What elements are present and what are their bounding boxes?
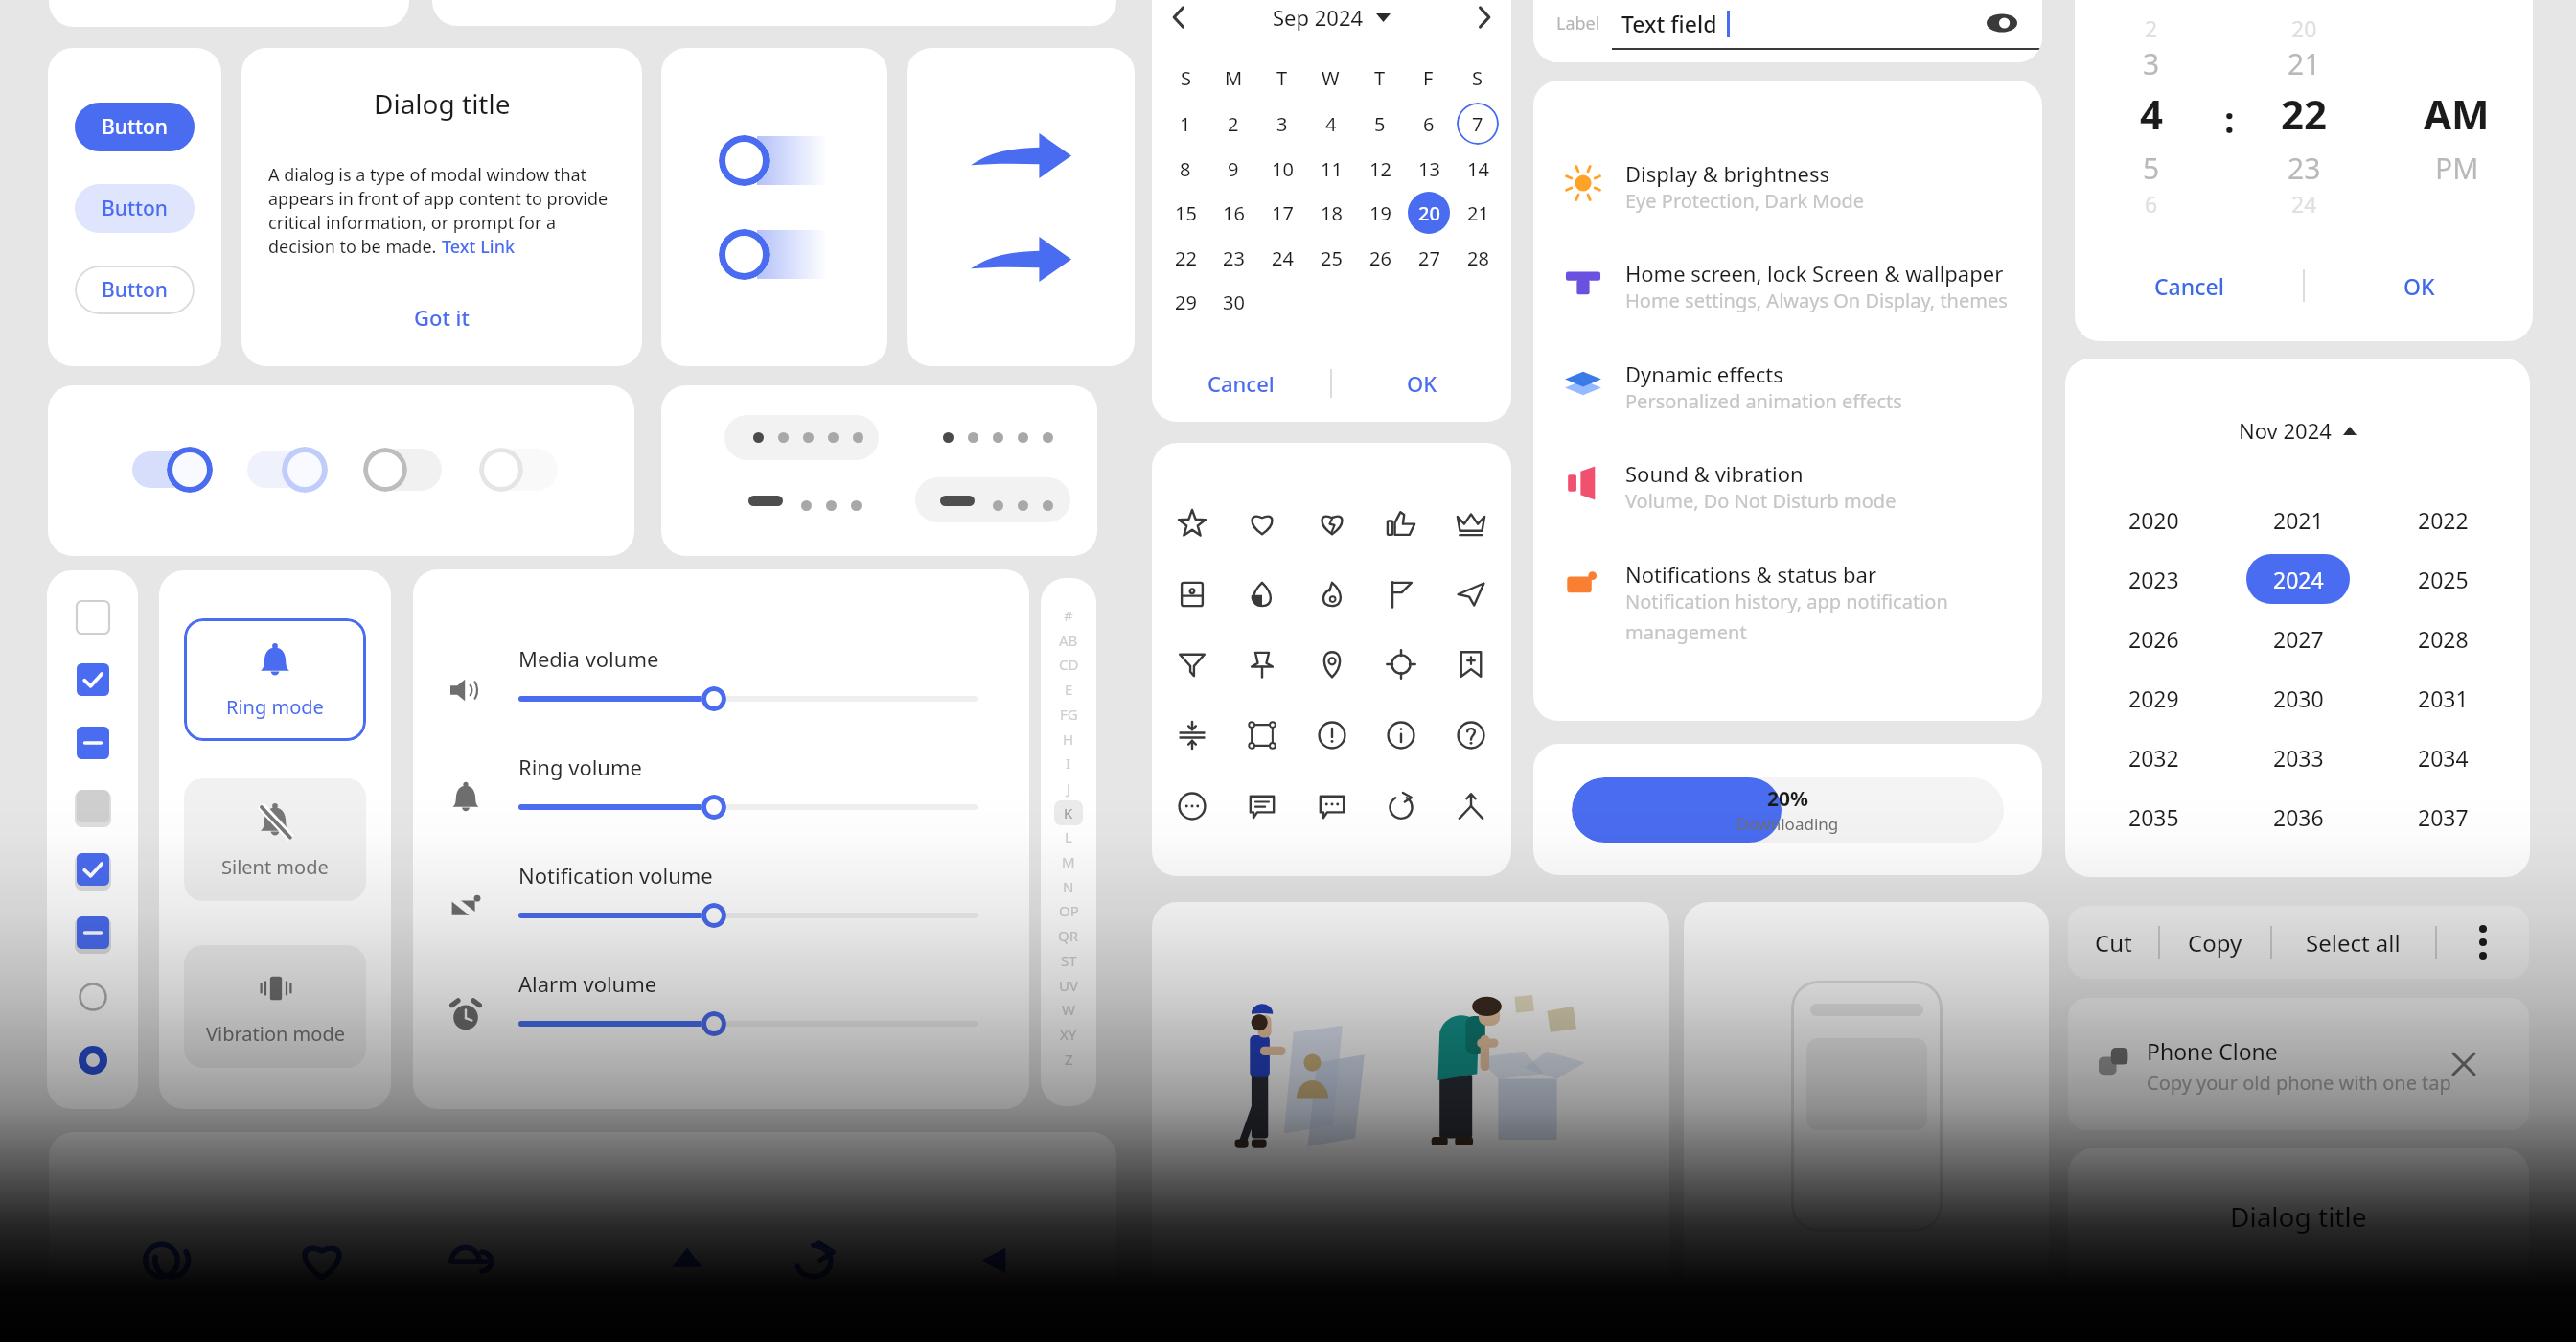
button[interactable]: help [1446, 710, 1496, 760]
button[interactable]: Button [75, 266, 195, 314]
button[interactable]: Cut [2068, 906, 2158, 979]
button[interactable] [915, 477, 1070, 522]
button[interactable]: Cancel [2075, 259, 2303, 312]
button[interactable]: crown [1446, 498, 1496, 548]
button[interactable]: Checkbox [75, 851, 111, 888]
button[interactable]: More options [2436, 906, 2529, 979]
button[interactable]: location [1307, 639, 1357, 689]
button[interactable]: Display & brightness [1562, 159, 2035, 214]
button[interactable]: drop [1237, 569, 1287, 619]
button[interactable]: 13 [1408, 148, 1450, 190]
button[interactable]: Checkbox [75, 725, 111, 761]
button[interactable]: 2026 [2102, 613, 2205, 663]
button[interactable]: W [1054, 997, 1083, 1022]
button[interactable]: 10 [1261, 148, 1303, 190]
button[interactable]: M [1054, 849, 1083, 874]
button[interactable]: 25 [1310, 237, 1352, 279]
button[interactable]: target [1376, 639, 1426, 689]
button[interactable]: info [1376, 710, 1426, 760]
button[interactable]: 11 [1310, 148, 1352, 190]
button[interactable]: 2020 [2102, 495, 2205, 544]
button[interactable]: 14 [1457, 148, 1499, 190]
button[interactable] [724, 415, 879, 460]
button[interactable]: send [1446, 569, 1496, 619]
button[interactable]: 19 [1359, 192, 1401, 234]
button[interactable]: H [1054, 727, 1083, 752]
button[interactable]: 22 [1164, 237, 1207, 279]
button[interactable]: Previous month [1160, 0, 1198, 36]
button[interactable]: Copy [2159, 906, 2271, 979]
button[interactable]: UV [1054, 973, 1083, 998]
button[interactable]: Vibration mode [184, 945, 366, 1068]
button[interactable]: 2027 [2246, 613, 2350, 663]
button[interactable]: 18 [1310, 192, 1352, 234]
button[interactable]: J [1054, 775, 1083, 800]
button[interactable]: CD [1054, 652, 1083, 677]
button[interactable]: 2029 [2102, 673, 2205, 723]
button[interactable]: Switch [247, 446, 328, 494]
button[interactable]: Dynamic effects [1562, 359, 2035, 414]
button[interactable]: chatdots [1307, 781, 1357, 831]
button[interactable]: Checkbox [75, 914, 111, 951]
button[interactable]: 24 [1261, 237, 1303, 279]
button[interactable]: ST [1054, 948, 1083, 973]
button[interactable]: 2021 [2246, 495, 2350, 544]
button[interactable]: star [1167, 498, 1217, 548]
button[interactable]: Button [75, 184, 195, 233]
button[interactable]: 26 [1359, 237, 1401, 279]
button[interactable]: OP [1054, 898, 1083, 923]
button[interactable]: 3 [1261, 103, 1303, 145]
button[interactable]: # [1054, 603, 1083, 628]
button[interactable]: 2025 [2391, 554, 2495, 604]
button[interactable]: Select all [2271, 906, 2435, 979]
button[interactable]: inbox [1167, 569, 1217, 619]
button[interactable]: 2030 [2246, 673, 2350, 723]
button[interactable]: 28 [1457, 237, 1499, 279]
button[interactable]: 30 [1212, 281, 1254, 323]
button[interactable]: 1 [1164, 103, 1207, 145]
button[interactable]: AB [1054, 628, 1083, 653]
button[interactable]: 2022 [2391, 495, 2495, 544]
button[interactable]: Switch [719, 229, 827, 280]
button[interactable]: N [1054, 874, 1083, 899]
button[interactable]: dots [1167, 781, 1217, 831]
button[interactable]: Switch [363, 446, 444, 494]
button[interactable]: 8 [1164, 148, 1207, 190]
button[interactable]: thumb [1376, 498, 1426, 548]
button[interactable]: fire [1307, 569, 1357, 619]
button[interactable]: 7 [1457, 103, 1499, 145]
button[interactable]: L [1054, 824, 1083, 849]
button[interactable]: Switch [132, 446, 213, 494]
button[interactable]: FG [1054, 702, 1083, 727]
button[interactable]: Text Link [442, 235, 515, 259]
button[interactable]: Checkbox [75, 599, 111, 636]
button[interactable]: Switch [719, 135, 827, 186]
button[interactable]: Ring mode [184, 618, 366, 741]
button[interactable]: Switch [479, 446, 560, 494]
button[interactable]: Checkbox [75, 661, 111, 698]
button[interactable]: 20 [1408, 192, 1450, 234]
button[interactable]: 2037 [2391, 792, 2495, 842]
button[interactable]: 2023 [2102, 554, 2205, 604]
button[interactable]: updown [1167, 710, 1217, 760]
button[interactable]: flag [1376, 569, 1426, 619]
button[interactable]: 27 [1408, 237, 1450, 279]
button[interactable]: heart [1237, 498, 1287, 548]
button[interactable]: 16 [1212, 192, 1254, 234]
button[interactable]: Radio button [75, 979, 111, 1015]
button[interactable]: Silent mode [184, 778, 366, 901]
button[interactable]: 2024 [2246, 554, 2350, 604]
button[interactable]: merge [1446, 781, 1496, 831]
button[interactable]: Z [1054, 1047, 1083, 1072]
button[interactable]: 6 [1408, 103, 1450, 145]
button[interactable]: Next month [1465, 0, 1504, 36]
button[interactable]: E [1054, 677, 1083, 702]
button[interactable]: OK [2305, 259, 2533, 312]
button[interactable]: Close [2448, 1048, 2480, 1080]
button[interactable]: chat [1237, 781, 1287, 831]
button[interactable]: filter [1167, 639, 1217, 689]
button[interactable]: I [1054, 751, 1083, 775]
button[interactable]: 2028 [2391, 613, 2495, 663]
button[interactable]: Home screen, lock Screen & wallpaper [1562, 259, 2035, 313]
button[interactable]: 17 [1261, 192, 1303, 234]
